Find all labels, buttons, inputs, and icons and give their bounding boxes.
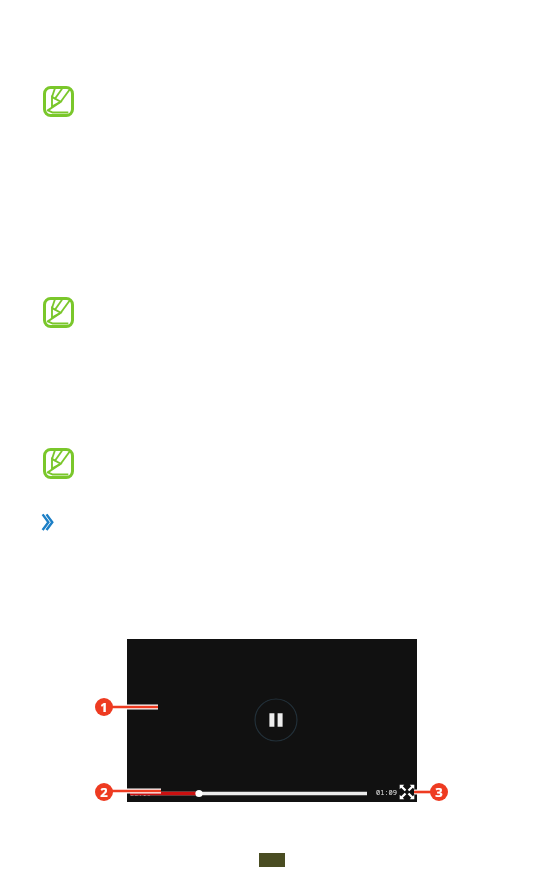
button[interactable]: Callout 2 (95, 783, 113, 801)
staticText: 1 (100, 698, 108, 716)
button[interactable]: Callout 3 (430, 783, 448, 801)
button[interactable]: Pause (254, 698, 298, 742)
button[interactable]: Fullscreen (399, 784, 415, 800)
staticText: 3 (435, 783, 443, 801)
staticText: 01:09 (376, 788, 397, 798)
button[interactable]: Expand (38, 508, 58, 534)
staticText: 2 (100, 783, 108, 801)
staticText: 00:19 (130, 789, 151, 799)
button[interactable]: Callout 1 (95, 698, 113, 716)
